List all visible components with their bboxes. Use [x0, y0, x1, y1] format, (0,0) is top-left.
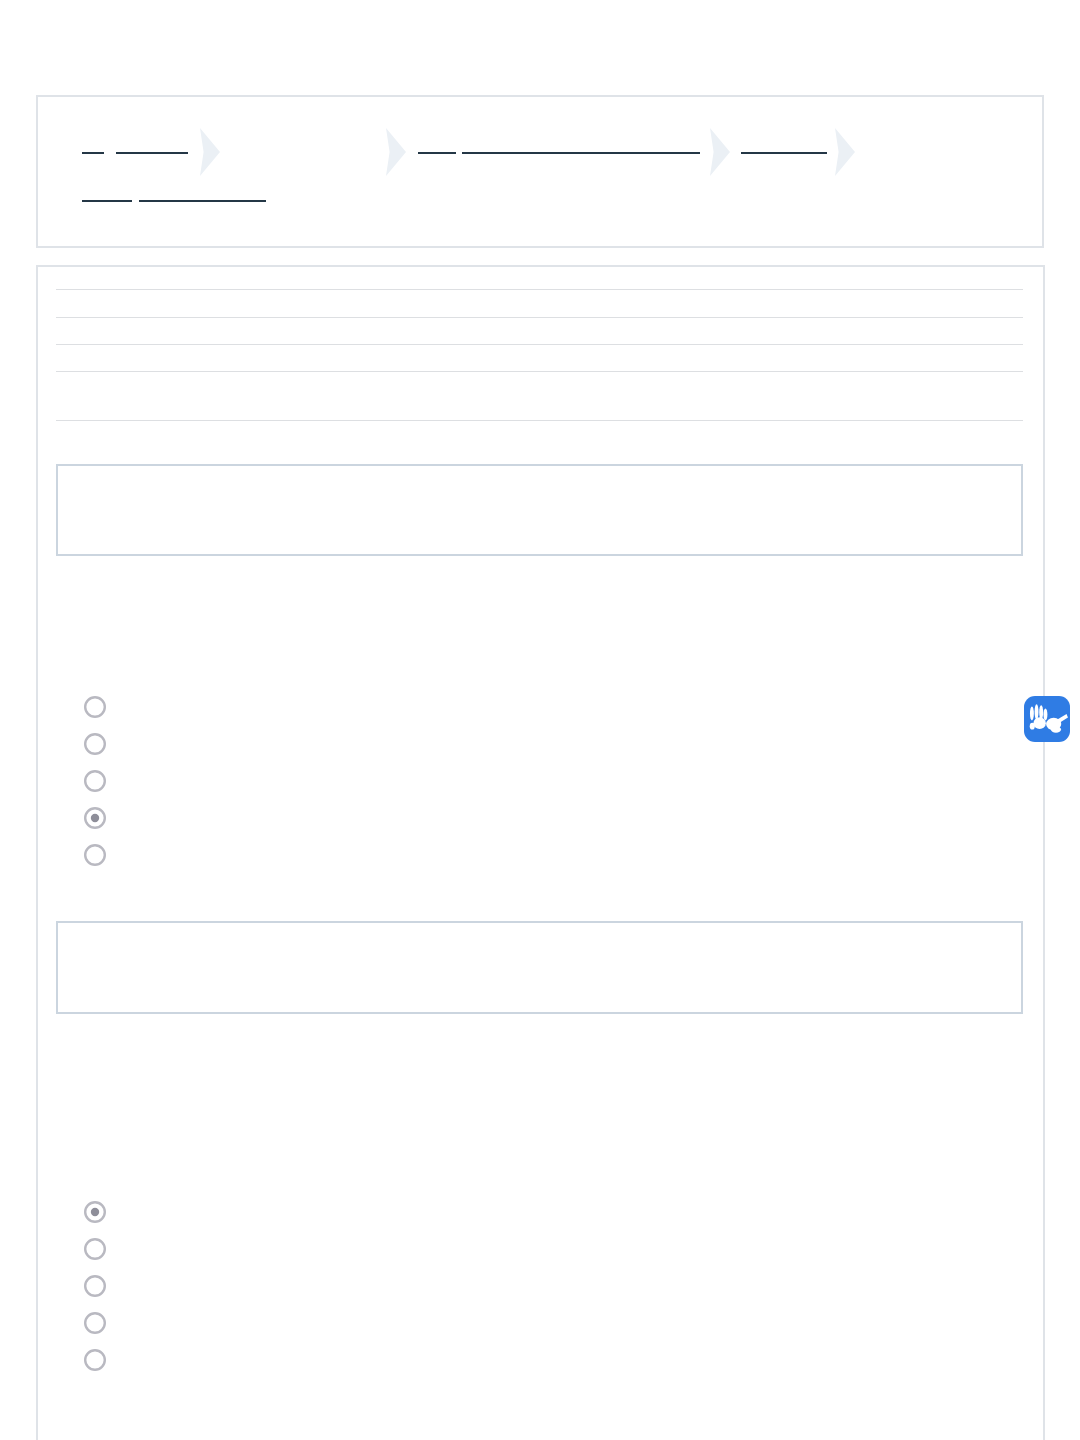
button[interactable]: Option 2 — [60, 725, 960, 763]
button[interactable]: Choice 4 — [60, 1304, 960, 1342]
button[interactable]: Choice 1 — [60, 1193, 960, 1231]
button[interactable]: Option 3 — [60, 762, 960, 800]
button[interactable] — [36, 95, 1044, 248]
button[interactable]: Sign language accessibility — [1024, 696, 1070, 742]
button[interactable]: Choice 3 — [60, 1267, 960, 1305]
button[interactable]: Choice 2 — [60, 1230, 960, 1268]
button[interactable]: Option 5 — [60, 836, 960, 874]
button[interactable] — [116, 143, 188, 161]
button[interactable]: Choice 5 — [60, 1341, 960, 1379]
button[interactable] — [56, 464, 1023, 556]
button[interactable] — [56, 921, 1023, 1014]
button[interactable]: Option 1 — [60, 688, 960, 726]
button[interactable] — [741, 143, 827, 161]
button[interactable] — [462, 143, 700, 161]
button[interactable] — [82, 143, 104, 161]
button[interactable] — [418, 143, 456, 161]
button[interactable] — [139, 191, 266, 209]
button[interactable]: Option 4 — [60, 799, 960, 837]
button[interactable] — [82, 191, 132, 209]
